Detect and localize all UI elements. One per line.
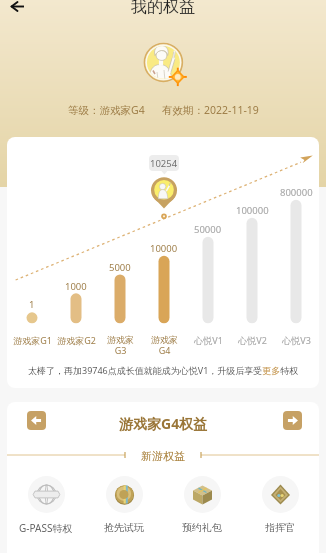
button[interactable]: 抢先试玩 bbox=[85, 476, 163, 534]
staticText: 心悦V1 bbox=[194, 334, 223, 346]
staticText: 指挥官 bbox=[265, 521, 295, 534]
staticText: 游戏家G2 bbox=[57, 334, 96, 346]
button[interactable]: Next bbox=[283, 411, 302, 430]
staticText: 游戏家 G4 bbox=[151, 334, 178, 356]
button[interactable]: 指挥官 bbox=[241, 476, 319, 534]
staticText: 心悦V2 bbox=[238, 334, 267, 346]
staticText: 50000 bbox=[194, 223, 222, 235]
staticText: 100000 bbox=[236, 204, 269, 216]
staticText: 太棒了，再加39746点成长值就能成为心悦V1，升级后享受更多特权 bbox=[28, 364, 299, 376]
staticText: 抢先试玩 bbox=[104, 521, 144, 534]
staticText: 有效期：2022-11-19 bbox=[162, 103, 259, 117]
staticText: 心悦V3 bbox=[282, 334, 311, 346]
staticText: 游戏家G4权益 bbox=[119, 414, 208, 433]
staticText: 等级：游戏家G4 bbox=[68, 103, 145, 117]
staticText: 1 bbox=[29, 298, 35, 310]
button[interactable]: 预约礼包 bbox=[163, 476, 241, 534]
button[interactable]: Previous bbox=[27, 411, 46, 430]
staticText: 新游权益 bbox=[141, 449, 185, 463]
staticText: 10000 bbox=[150, 242, 178, 254]
staticText: 游戏家 G3 bbox=[107, 334, 134, 356]
staticText: 我的权益 bbox=[131, 0, 195, 17]
staticText: 预约礼包 bbox=[182, 521, 222, 534]
staticText: 10254 bbox=[150, 157, 178, 170]
button[interactable]: G-PASS特权 bbox=[7, 476, 85, 535]
staticText: 游戏家G1 bbox=[13, 334, 52, 346]
button[interactable]: Back bbox=[2, 0, 32, 21]
staticText: 1000 bbox=[65, 280, 87, 292]
staticText: G-PASS特权 bbox=[19, 521, 73, 535]
staticText: 800000 bbox=[280, 186, 313, 198]
staticText: 5000 bbox=[109, 261, 131, 273]
